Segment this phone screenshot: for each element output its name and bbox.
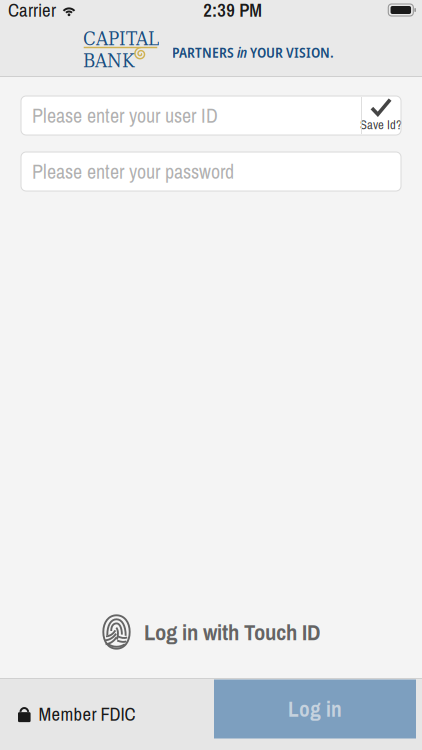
staticText: Log in — [288, 695, 342, 723]
button[interactable]: Log in with Touch ID — [0, 608, 422, 656]
staticText: BANK — [83, 50, 135, 72]
staticText: Please enter your password — [32, 158, 234, 185]
button[interactable]: Log in — [214, 679, 416, 738]
staticText: Carrier — [8, 0, 56, 22]
staticText: YOUR VISION. — [247, 42, 334, 62]
button[interactable]: Save Id? — [361, 97, 401, 134]
staticText: 2:39 PM — [203, 0, 262, 22]
staticText: Please enter your user ID — [32, 102, 218, 129]
staticText: PARTNERS — [172, 42, 237, 62]
staticText: Member FDIC — [39, 701, 136, 726]
staticText: Log in with Touch ID — [144, 617, 320, 647]
staticText: CAPITAL — [83, 28, 159, 49]
staticText: in — [237, 42, 247, 62]
staticText: Save Id? — [360, 116, 402, 133]
